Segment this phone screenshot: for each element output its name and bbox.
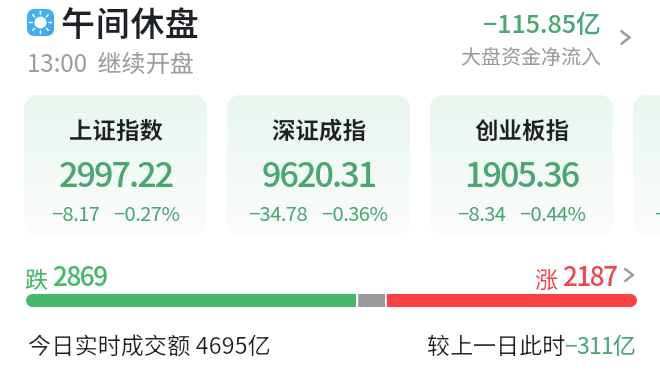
staticText: 较上一日此时 bbox=[427, 327, 565, 360]
staticText: 上证指数 bbox=[69, 112, 163, 146]
button[interactable]: 较上一日此时 bbox=[427, 327, 636, 360]
staticText: −311亿 bbox=[565, 327, 636, 360]
staticText: 13:00 继续开盘 bbox=[27, 44, 194, 79]
staticText: 2869 bbox=[53, 256, 107, 294]
staticText: −8.34 bbox=[458, 198, 506, 227]
staticText: 9620.31 bbox=[262, 148, 376, 197]
staticText: 1905.36 bbox=[465, 148, 579, 197]
staticText: 2187 bbox=[563, 256, 617, 294]
staticText: 创业板指 bbox=[475, 112, 569, 146]
other: More fund flow bbox=[613, 25, 638, 50]
button[interactable]: 深证成指 bbox=[227, 95, 410, 235]
staticText: 大盘资金净流入 bbox=[461, 41, 601, 70]
button[interactable]: 上证指数 bbox=[24, 95, 207, 235]
button[interactable]: 今日实时成交额 4695亿 bbox=[28, 327, 271, 360]
other: More market breadth bbox=[617, 263, 641, 287]
button[interactable]: 涨 bbox=[535, 256, 641, 294]
staticText: 深证成指 bbox=[272, 112, 366, 146]
button[interactable]: −115.85亿 bbox=[461, 4, 638, 70]
button[interactable]: 创业板指 bbox=[430, 95, 613, 235]
staticText: −34.78 bbox=[249, 198, 308, 227]
button[interactable]: 北证50 bbox=[633, 95, 660, 235]
staticText: −15.27 bbox=[655, 198, 660, 227]
staticText: −0.44% bbox=[520, 198, 586, 227]
staticText: −0.27% bbox=[114, 198, 180, 227]
button[interactable]: 午间休盘 bbox=[27, 0, 200, 47]
staticText: 午间休盘 bbox=[61, 0, 200, 46]
staticText: 跌 bbox=[25, 261, 48, 294]
button[interactable]: 跌 bbox=[25, 256, 107, 294]
staticText: −115.85亿 bbox=[483, 4, 601, 40]
staticText: 涨 bbox=[535, 261, 558, 294]
staticText: 2997.22 bbox=[59, 148, 173, 197]
staticText: −8.17 bbox=[52, 198, 100, 227]
staticText: −0.36% bbox=[322, 198, 388, 227]
